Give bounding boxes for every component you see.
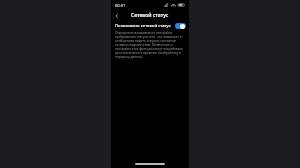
button[interactable]: Back [113, 12, 121, 20]
staticText: Определите возможность настройки отображ… [115, 31, 185, 59]
button[interactable]: Показывать сетевой статус [111, 21, 189, 30]
staticText: 00:01 [115, 3, 126, 8]
button[interactable]: Toggle network status [175, 23, 186, 29]
staticText: Сетевой статус [131, 12, 169, 19]
staticText: Показывать сетевой статус [115, 23, 173, 29]
